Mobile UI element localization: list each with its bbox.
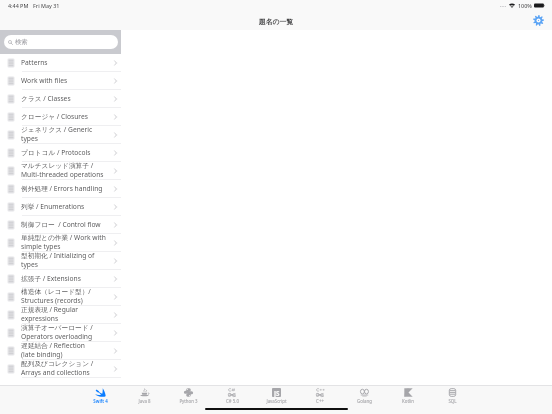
button[interactable]: 遅延結合 / Reflection <box>0 342 121 360</box>
staticText: Kotlin <box>402 398 414 404</box>
staticText: 列挙 / Enumerations <box>21 202 85 211</box>
staticText: プロトコル / Protocols <box>21 148 91 157</box>
staticText: 型初期化 / Initializing of <box>21 251 95 260</box>
button[interactable]: SQL <box>430 386 474 414</box>
button[interactable]: 構造体（レコード型）/ <box>0 288 121 306</box>
staticText: 構造体（レコード型）/ <box>21 287 91 296</box>
staticText: Operators overloading <box>21 332 93 341</box>
staticText: 遅延結合 / Reflection <box>21 341 85 350</box>
button[interactable]: マルチスレッド演算子 / <box>0 162 121 180</box>
staticText: 単純型との作業 / Work with <box>21 233 106 242</box>
button[interactable]: 正規表現 / Regular <box>0 306 121 324</box>
staticText: クロージャ / Closures <box>21 112 88 121</box>
staticText: C# 5.0 <box>226 398 239 404</box>
button[interactable]: プロトコル / Protocols <box>0 144 121 162</box>
staticText: 拡張子 / Extensions <box>21 274 81 283</box>
button[interactable]: クラス / Classes <box>0 90 121 108</box>
staticText: simple types <box>21 242 61 251</box>
button[interactable]: 列挙 / Enumerations <box>0 198 121 216</box>
staticText: 配列及びコレクション / <box>21 359 94 368</box>
staticText: 例外処理 / Errors handling <box>21 184 103 193</box>
staticText: expressions <box>21 314 59 323</box>
button[interactable]: 配列及びコレクション / <box>0 360 121 378</box>
staticText: JS <box>274 389 280 397</box>
staticText: C++ <box>316 398 324 404</box>
button[interactable]: JS <box>254 386 298 414</box>
button[interactable]: 例外処理 / Errors handling <box>0 180 121 198</box>
button[interactable]: Settings <box>525 11 552 29</box>
button[interactable]: C# 5.0 <box>210 386 254 414</box>
staticText: 演算子オーバーロード / <box>21 323 93 332</box>
button[interactable]: 型初期化 / Initializing of <box>0 252 121 270</box>
staticText: Multi-threaded operations <box>21 170 104 179</box>
staticText: 100% <box>518 2 532 9</box>
staticText: SQL <box>448 398 457 404</box>
button[interactable]: ジェネリクス / Generic <box>0 126 121 144</box>
button[interactable]: Kotlin <box>386 386 430 414</box>
button[interactable]: Work with files <box>0 72 121 90</box>
staticText: Structures (records) <box>21 296 83 305</box>
staticText: types <box>21 260 38 269</box>
staticText: 正規表現 / Regular <box>21 305 79 314</box>
staticText: 題名の一覧 <box>259 17 294 26</box>
staticText: Golang <box>357 398 372 404</box>
button[interactable]: 単純型との作業 / Work with <box>0 234 121 252</box>
button[interactable]: Swift 4 <box>78 386 122 414</box>
staticText: Work with files <box>21 76 68 85</box>
staticText: クラス / Classes <box>21 94 71 103</box>
staticText: マルチスレッド演算子 / <box>21 161 94 170</box>
staticText: (late binding) <box>21 350 63 359</box>
staticText: 検索 <box>15 38 28 46</box>
button[interactable]: Golang <box>342 386 386 414</box>
staticText: Patterns <box>21 58 48 67</box>
staticText: Fri May 31 <box>33 2 60 9</box>
staticText: JavaScript <box>266 398 287 404</box>
button[interactable]: Java 8 <box>122 386 166 414</box>
staticText: Arrays and collections <box>21 368 90 377</box>
button[interactable]: 制御フロー / Control flow <box>0 216 121 234</box>
staticText: types <box>21 134 38 143</box>
button[interactable]: Patterns <box>0 54 121 72</box>
button[interactable]: 演算子オーバーロード / <box>0 324 121 342</box>
button[interactable]: C++ <box>298 386 342 414</box>
staticText: Java 8 <box>138 398 151 404</box>
button[interactable]: Python 3 <box>166 386 210 414</box>
staticText: Swift 4 <box>93 398 108 404</box>
button[interactable]: 拡張子 / Extensions <box>0 270 121 288</box>
button[interactable]: 検索 <box>4 35 118 49</box>
staticText: 4:44 PM <box>8 2 29 9</box>
button[interactable]: クロージャ / Closures <box>0 108 121 126</box>
staticText: 制御フロー / Control flow <box>21 220 101 229</box>
staticText: ジェネリクス / Generic <box>21 125 93 134</box>
staticText: Python 3 <box>179 398 198 404</box>
